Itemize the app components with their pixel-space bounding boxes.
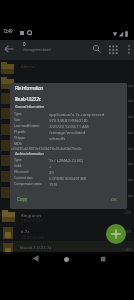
staticText: File count: xyxy=(14,169,29,174)
staticText: Archive information xyxy=(15,151,44,156)
staticText: File information xyxy=(15,85,43,92)
staticText: 15% xyxy=(49,181,58,187)
button[interactable] xyxy=(98,254,108,264)
staticText: FS path: xyxy=(14,129,26,134)
button[interactable] xyxy=(126,44,132,56)
staticText: Content size: xyxy=(14,175,33,180)
staticText: Type: xyxy=(14,157,22,162)
staticText: 3/25/20 12:03:11 AM xyxy=(49,123,89,129)
staticText: cf3d35d2f059ef343418c0b6d0b09e6b xyxy=(11,146,82,152)
staticText: /storage/emulated xyxy=(49,129,86,135)
button[interactable] xyxy=(108,44,119,55)
button[interactable] xyxy=(0,241,134,253)
staticText: Solid: xyxy=(14,163,22,168)
staticText: Last modification: xyxy=(14,123,40,128)
staticText: Ringtones xyxy=(21,212,42,218)
button[interactable]: Copy xyxy=(13,193,35,205)
staticText: 970.34KB (993631B) xyxy=(49,117,88,123)
staticText: sdcardfs xyxy=(49,135,66,141)
staticText: MD5: xyxy=(14,141,22,146)
staticText: 3/25/20 12:03 AM xyxy=(21,219,44,223)
staticText: Type: xyxy=(14,111,22,116)
button[interactable] xyxy=(61,254,72,265)
staticText: 4KB xyxy=(125,230,131,234)
staticText: 24B xyxy=(125,211,131,215)
button[interactable]: OK xyxy=(106,193,124,205)
staticText: OK xyxy=(111,196,118,202)
button[interactable] xyxy=(4,44,16,54)
staticText: 3/25/20 12:03 AM 970.34KB xyxy=(20,252,56,256)
staticText: libusb-1.0.23.7z xyxy=(15,96,41,102)
staticText: Compression ratio: xyxy=(14,181,42,186)
staticText: lt.7z xyxy=(21,228,30,234)
button[interactable] xyxy=(31,254,41,264)
staticText: + xyxy=(49,163,52,169)
staticText: 6.01MB (6304913B) xyxy=(49,175,87,181)
staticText: Alarms xyxy=(21,63,36,69)
staticText: /storage/emulated xyxy=(23,47,51,52)
staticText: application/x-7z-compressed xyxy=(49,111,105,117)
button[interactable] xyxy=(0,209,134,225)
staticText: FS type: xyxy=(14,135,26,140)
staticText: General information xyxy=(15,104,44,109)
staticText: 29 xyxy=(49,169,54,175)
staticText: 12:49 xyxy=(3,28,13,34)
staticText: 1.2MB xyxy=(122,248,132,252)
staticText: Copy xyxy=(17,196,28,202)
button[interactable] xyxy=(91,43,103,56)
staticText: 0 xyxy=(23,41,26,47)
staticText: 7z / LZMA2:23 BCJ xyxy=(49,157,84,163)
staticText: libusb-1.0.23.7z xyxy=(20,244,52,250)
staticText: 3/25/20 12:07 AM xyxy=(21,236,44,240)
button[interactable] xyxy=(106,224,126,244)
staticText: Size: xyxy=(14,117,21,122)
button[interactable] xyxy=(0,225,134,241)
